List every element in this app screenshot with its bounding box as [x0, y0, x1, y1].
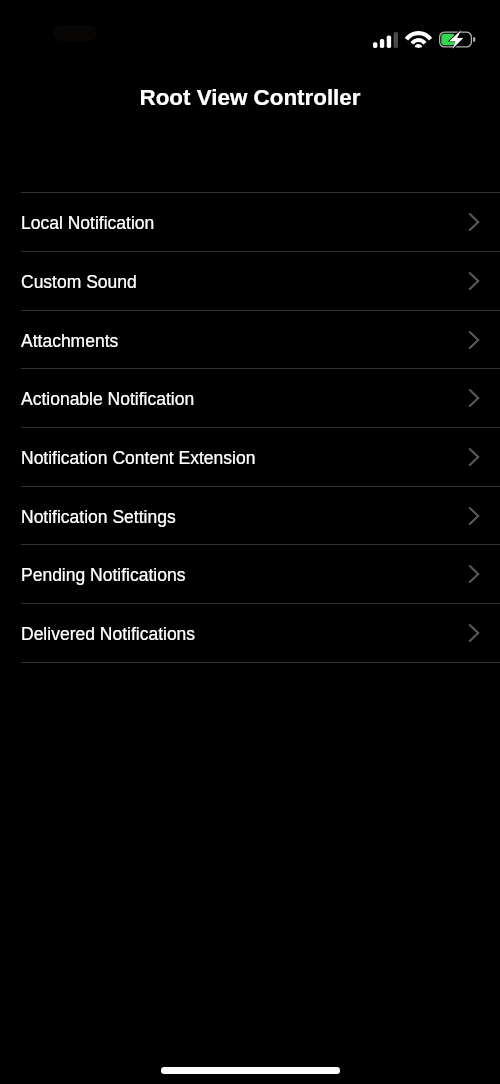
staticText: Pending Notifications — [21, 565, 186, 585]
staticText: Notification Settings — [21, 507, 176, 527]
staticText: Delivered Notifications — [21, 624, 196, 644]
button[interactable]: Custom Sound — [0, 251, 500, 310]
staticText: Root View Controller — [139, 85, 361, 110]
button[interactable]: Delivered Notifications — [0, 603, 500, 662]
button[interactable]: Notification Settings — [0, 486, 500, 545]
staticText: Notification Content Extension — [21, 448, 256, 468]
staticText: Attachments — [21, 331, 119, 351]
button[interactable]: Pending Notifications — [0, 544, 500, 603]
button[interactable]: Notification Content Extension — [0, 427, 500, 486]
button[interactable]: Local Notification — [0, 192, 500, 251]
staticText: Actionable Notification — [21, 389, 195, 409]
staticText: Local Notification — [21, 213, 155, 233]
staticText: Custom Sound — [21, 272, 137, 292]
button[interactable]: Actionable Notification — [0, 368, 500, 427]
button[interactable]: Attachments — [0, 310, 500, 369]
